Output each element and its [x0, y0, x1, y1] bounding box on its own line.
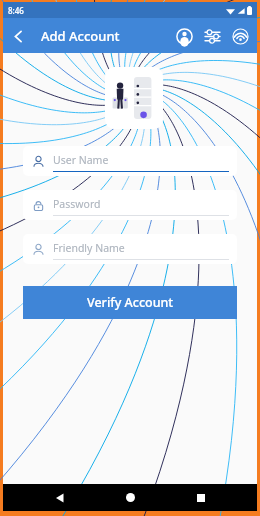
staticText: 8:46	[8, 5, 24, 16]
staticText: Verify Account	[87, 294, 174, 311]
button[interactable]: Home	[117, 484, 144, 511]
button[interactable]: Settings	[198, 22, 226, 50]
staticText: User Name	[53, 153, 109, 167]
button[interactable]: Navigate up	[3, 21, 33, 51]
button[interactable]: Account	[170, 22, 198, 50]
button[interactable]: Back	[46, 484, 73, 511]
staticText: Friendly Name	[53, 241, 125, 255]
button[interactable]: User Name	[23, 146, 237, 176]
button[interactable]: Network	[226, 22, 254, 50]
button[interactable]: Friendly Name	[23, 234, 237, 264]
button[interactable]: Recent apps	[187, 484, 214, 511]
staticText: Password	[53, 197, 101, 211]
button[interactable]: Password	[23, 190, 237, 220]
staticText: Add Account	[41, 27, 120, 45]
button[interactable]: Verify Account	[23, 286, 237, 319]
